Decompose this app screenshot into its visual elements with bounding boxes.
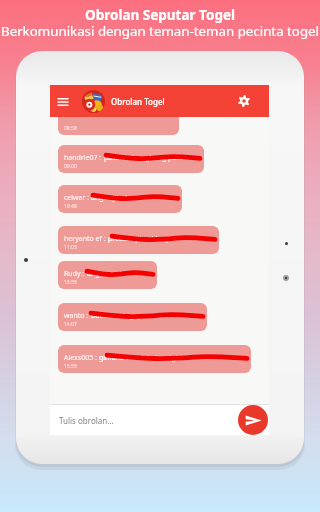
staticText: celwar : [64,193,91,203]
staticText: Rudy : [64,269,87,279]
staticText: 15:55 [64,363,77,370]
button[interactable]: Settings [236,93,252,109]
button[interactable]: Alexs005 : [58,345,251,373]
button[interactable]: 08:58 [58,107,179,135]
button[interactable]: Menu [50,85,269,117]
staticText: 14:07 [64,321,77,328]
staticText: 10:48 [64,203,77,210]
staticText: Obrolan Seputar Togel [0,6,320,24]
staticText: 13:35 [64,279,77,286]
button[interactable]: Menu [55,94,71,110]
staticText: wanto : [64,311,91,321]
button[interactable]: wanto : [58,303,207,331]
staticText: heryanto ef : [64,234,108,244]
staticText: gimana cara lakukan tgl ini [99,353,188,363]
staticText: 09:00 [64,163,77,170]
button[interactable]: celwar : [58,185,182,213]
button[interactable]: Home [283,275,289,281]
staticText: 08:58 [64,125,77,132]
staticText: Berkomunikasi dengan teman-teman pecinta… [0,22,320,40]
button[interactable]: Send [238,405,268,435]
staticText: pasaran hongkong pasaran [104,153,195,163]
button[interactable]: heryanto ef : [58,226,219,254]
staticText: Alexs005 : [64,353,99,363]
button[interactable]: handrie07 : [58,145,204,173]
staticText: angka jitu hari [91,193,139,203]
staticText: Obrolan Togel [111,96,165,107]
staticText: Tulis obrolan... [59,415,114,426]
button[interactable]: Rudy : [58,261,157,289]
staticText: bocoran singapura hari [91,311,168,321]
staticText: 11:05 [64,244,77,251]
staticText: angka main [87,269,126,279]
staticText: handrie07 : [64,153,104,163]
staticText: prediksi jitu sidney [108,234,170,244]
